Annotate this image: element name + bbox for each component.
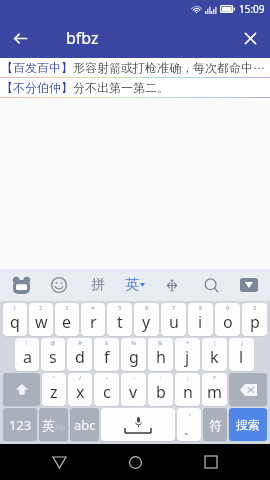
staticText: f (104, 346, 110, 368)
staticText: 6 (145, 304, 149, 312)
staticText: 搜索 (236, 417, 260, 432)
button[interactable]: 123 (3, 408, 37, 441)
button[interactable]: 英 (39, 408, 68, 441)
staticText: j (185, 346, 190, 368)
staticText: abc (74, 416, 96, 434)
button[interactable]: : (148, 373, 173, 406)
staticText: 7 (172, 304, 176, 312)
button[interactable]: 【不分伯仲】分不出第一第二。 (0, 78, 270, 97)
button[interactable]: # (67, 338, 92, 371)
staticText: ' (189, 412, 191, 423)
button[interactable]: * (175, 338, 200, 371)
button[interactable]: % (121, 338, 146, 371)
staticText: x (76, 381, 85, 403)
button[interactable]: 【百发百中】形容射箭或打枪准确，每次都命中目标… (0, 58, 270, 77)
button[interactable]: Backspace (229, 373, 267, 406)
staticText: 4 (91, 304, 95, 312)
staticText: t (117, 311, 123, 333)
button[interactable]: Baidu input (8, 272, 34, 298)
staticText: - (133, 374, 135, 382)
button[interactable]: Shift (3, 373, 40, 406)
staticText: c (103, 381, 111, 403)
staticText: 拼 (91, 276, 105, 294)
button[interactable]: ' (42, 373, 66, 406)
button[interactable]: 1 (3, 303, 27, 336)
staticText: a (23, 346, 32, 368)
staticText: ~ (105, 374, 109, 382)
staticText: ? (213, 374, 216, 382)
staticText: 0 (253, 304, 257, 312)
staticText: ! (26, 339, 28, 347)
button[interactable]: 3 (55, 303, 79, 336)
staticText: v (129, 381, 138, 403)
staticText: 5 (118, 304, 122, 312)
button[interactable]: $ (94, 338, 119, 371)
staticText: * (186, 339, 190, 347)
button[interactable]: / (68, 373, 92, 406)
staticText: o (223, 311, 233, 333)
staticText: 123 (9, 416, 32, 434)
button[interactable]: ; (175, 373, 200, 406)
button[interactable]: 0 (242, 303, 267, 336)
button[interactable]: Move cursor (159, 272, 185, 298)
staticText: h (156, 346, 166, 368)
button[interactable]: 6 (134, 303, 159, 336)
button[interactable]: ? (202, 373, 227, 406)
button[interactable]: Recents (194, 445, 228, 479)
staticText: 【百发百中】形容射箭或打枪准确，每次都命中目标… (1, 60, 269, 75)
button[interactable]: Space (101, 408, 175, 441)
staticText: 3 (65, 304, 69, 312)
button[interactable]: 英 (123, 276, 147, 294)
staticText: & (158, 339, 163, 347)
staticText: b (156, 381, 166, 403)
button[interactable]: Search (198, 272, 224, 298)
button[interactable]: & (148, 338, 173, 371)
staticText: r (90, 311, 97, 333)
button[interactable]: 5 (107, 303, 132, 336)
button[interactable]: 9 (215, 303, 240, 336)
staticText: i (198, 311, 203, 333)
button[interactable]: - (121, 373, 146, 406)
button[interactable]: Emoji (46, 272, 72, 298)
staticText: l (239, 346, 244, 368)
button[interactable]: Close (230, 18, 270, 58)
staticText: k (210, 346, 219, 368)
staticText: : (160, 374, 162, 382)
button[interactable]: ! (15, 338, 39, 371)
staticText: 2 (39, 304, 43, 312)
staticText: ( (214, 339, 216, 347)
button[interactable]: Hide keyboard (236, 272, 262, 298)
button[interactable]: ) (229, 338, 254, 371)
staticText: s (49, 346, 57, 368)
staticText: p (250, 311, 260, 333)
button[interactable]: abc (70, 408, 99, 441)
button[interactable]: Back (42, 445, 76, 479)
staticText: @ (50, 339, 56, 347)
button[interactable]: 拼 (85, 272, 111, 298)
staticText: u (169, 311, 179, 333)
staticText: w (35, 311, 48, 333)
staticText: g (129, 346, 139, 368)
button[interactable]: 符 (203, 408, 227, 441)
staticText: $ (105, 339, 109, 347)
staticText: 英 (125, 276, 139, 294)
button[interactable]: @ (41, 338, 65, 371)
staticText: 1 (13, 304, 17, 312)
button[interactable]: 8 (188, 303, 213, 336)
staticText: ; (187, 374, 189, 382)
button[interactable]: Back (0, 18, 40, 58)
button[interactable]: ~ (94, 373, 119, 406)
button[interactable]: 4 (81, 303, 105, 336)
staticText: d (75, 346, 85, 368)
staticText: 15:09 (239, 2, 265, 16)
staticText: z (50, 381, 58, 403)
button[interactable]: 搜索 (229, 408, 267, 441)
button[interactable]: ' (177, 408, 201, 441)
button[interactable]: ( (202, 338, 227, 371)
button[interactable]: 2 (29, 303, 53, 336)
staticText: n (183, 381, 193, 403)
button[interactable]: 7 (161, 303, 186, 336)
staticText: bfbz (66, 27, 99, 49)
staticText: e (62, 311, 72, 333)
button[interactable]: Home (118, 445, 152, 479)
